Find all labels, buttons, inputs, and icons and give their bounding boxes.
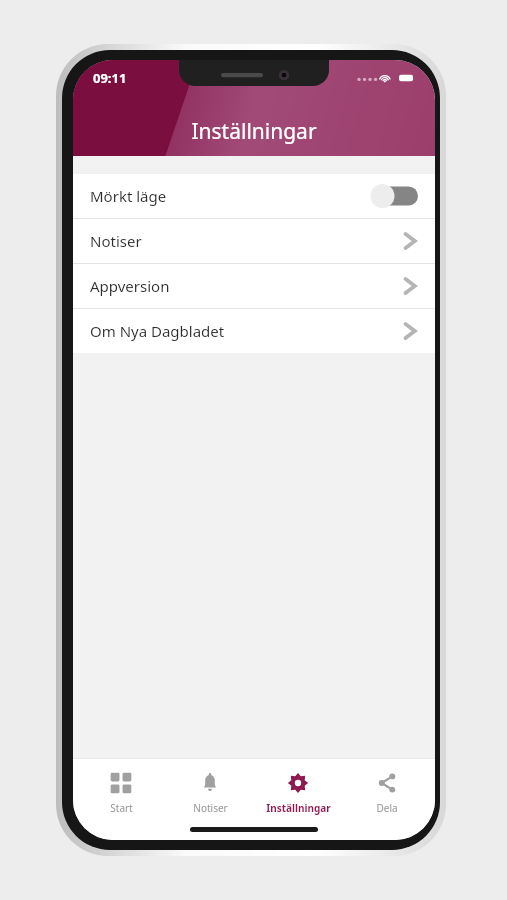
staticText: Dela — [376, 801, 398, 815]
button[interactable]: Dela — [347, 768, 427, 819]
other: Notiser — [199, 772, 221, 794]
staticText: Mörkt läge — [90, 186, 167, 206]
staticText: Appversion — [90, 276, 170, 296]
button[interactable]: Mörkt läge — [73, 174, 435, 218]
other: Inställningar — [287, 772, 309, 794]
staticText: Notiser — [90, 231, 142, 251]
button[interactable]: Start — [81, 768, 161, 819]
button[interactable]: Appversion — [73, 264, 435, 308]
button[interactable]: Notiser — [73, 219, 435, 263]
staticText: Inställningar — [266, 801, 331, 815]
other: Start — [110, 772, 132, 794]
other: Mörkt läge toggle — [370, 184, 418, 208]
other: Dela — [376, 772, 398, 794]
button[interactable]: Notiser — [170, 768, 250, 819]
staticText: Start — [110, 801, 133, 815]
staticText: Notiser — [193, 801, 228, 815]
staticText: Om Nya Dagbladet — [90, 321, 225, 341]
staticText: Inställningar — [191, 117, 317, 146]
button[interactable]: Om Nya Dagbladet — [73, 309, 435, 353]
staticText: 09:11 — [93, 69, 127, 87]
button[interactable]: Inställningar — [258, 768, 338, 819]
